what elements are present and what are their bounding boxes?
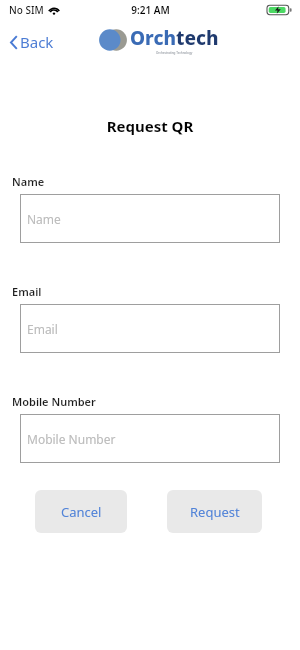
staticText: Orch <box>130 25 176 51</box>
staticText: Name <box>27 211 61 227</box>
staticText: Email <box>27 321 58 337</box>
staticText: 9:21 AM <box>131 3 170 17</box>
button[interactable]: Cancel <box>35 490 127 533</box>
button[interactable]: Name <box>20 194 280 243</box>
button[interactable]: Back <box>7 29 57 55</box>
staticText: Mobile Number <box>12 394 96 409</box>
staticText: Mobile Number <box>27 431 116 447</box>
staticText: Email <box>12 284 42 299</box>
button[interactable]: Mobile Number <box>20 414 280 463</box>
staticText: tech <box>176 25 219 51</box>
staticText: Orchestrating Technology <box>156 51 193 55</box>
staticText: Cancel <box>61 503 102 521</box>
button[interactable]: Request <box>167 490 262 533</box>
staticText: Name <box>12 174 45 189</box>
button[interactable]: Email <box>20 304 280 353</box>
staticText: No SIM <box>9 3 44 17</box>
staticText: Back <box>20 32 54 52</box>
staticText: Request QR <box>0 116 300 136</box>
staticText: Request <box>190 503 240 521</box>
